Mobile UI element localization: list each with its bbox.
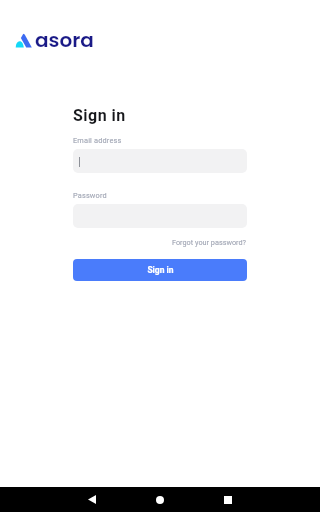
staticText: Sign in — [147, 265, 174, 275]
button[interactable]: Recent apps — [206, 487, 250, 512]
staticText: asora — [35, 26, 94, 50]
staticText: Email address — [73, 136, 122, 145]
button[interactable]: Back — [70, 487, 114, 512]
staticText: Sign in — [73, 106, 126, 125]
button[interactable]: Sign in — [73, 259, 247, 281]
button[interactable]: Email address field — [73, 149, 247, 173]
staticText: Password — [73, 191, 107, 200]
button[interactable]: Forgot your password? — [172, 238, 247, 247]
button[interactable]: Home — [138, 487, 182, 512]
button[interactable]: Asora — [12, 26, 96, 50]
